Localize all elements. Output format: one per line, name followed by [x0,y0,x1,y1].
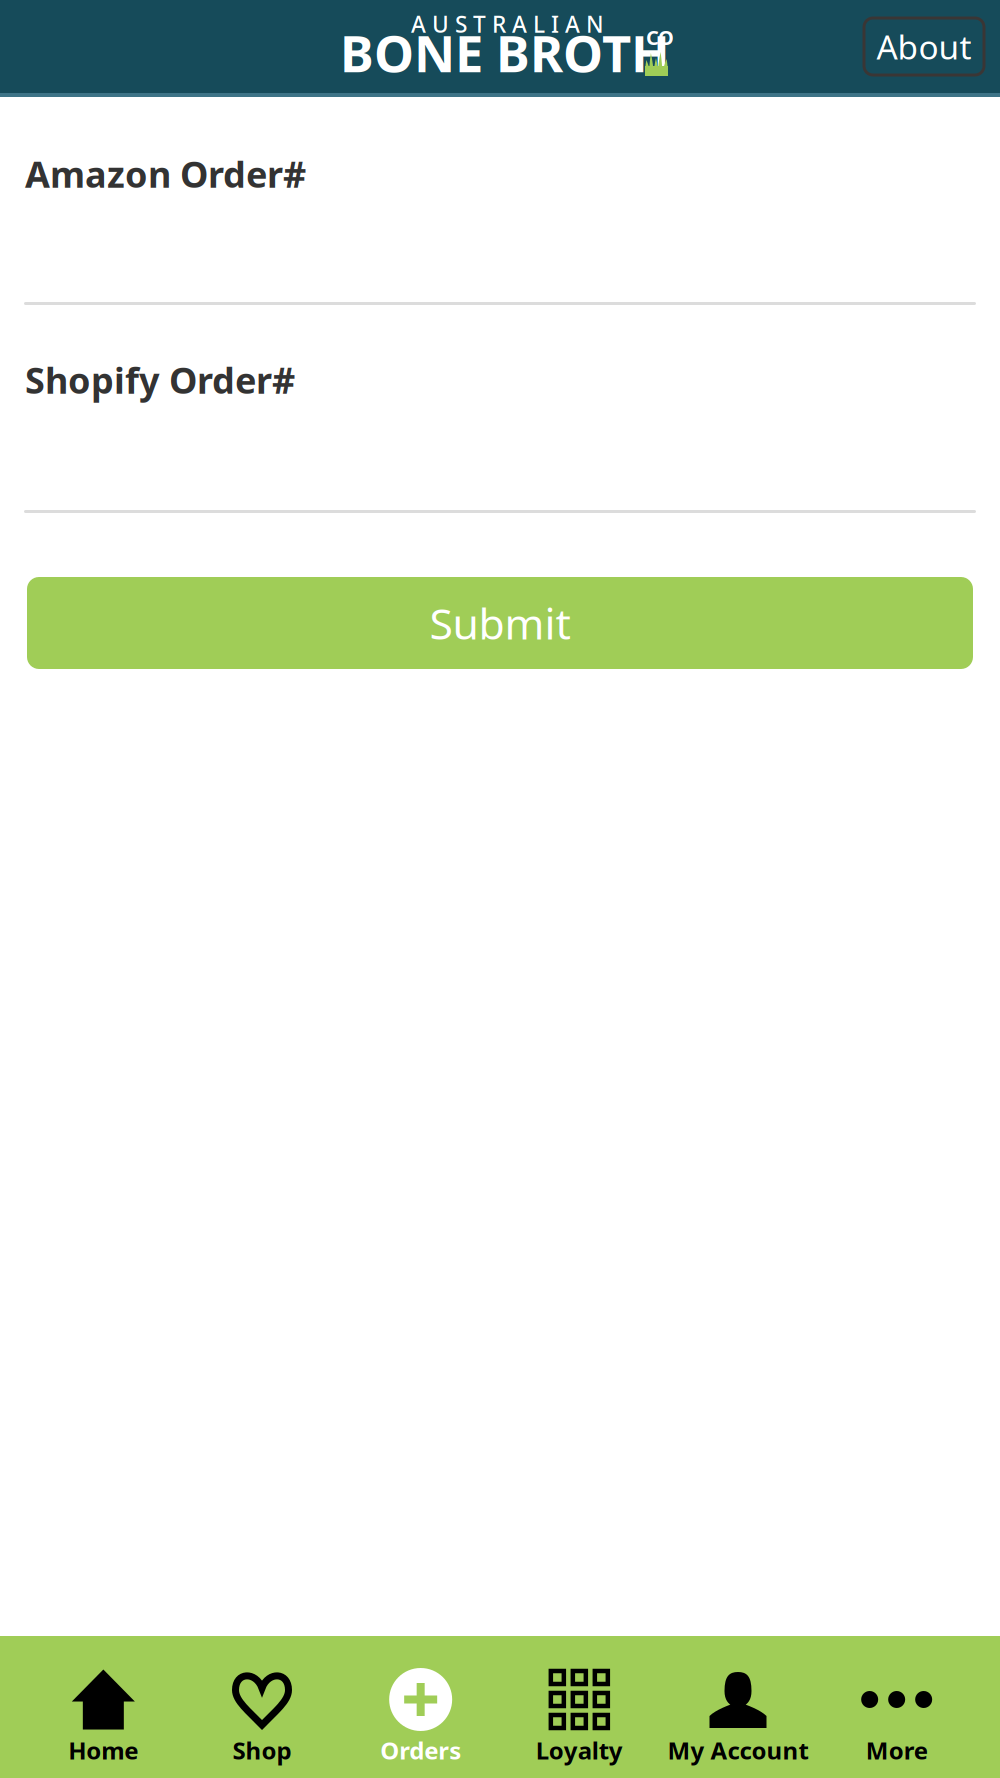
staticText: BONE BROTH [340,19,670,86]
staticText: My Account [667,1734,808,1766]
staticText: Submit [429,595,570,651]
staticText: More [866,1734,928,1766]
staticText: Home [68,1734,138,1766]
staticText: Amazon Order# [25,150,306,198]
button[interactable]: Shop [183,1636,341,1778]
staticText: Shop [232,1734,291,1766]
staticText: Loyalty [536,1734,623,1766]
button[interactable]: Loyalty [500,1636,659,1778]
button[interactable]: Orders [341,1636,500,1778]
button[interactable]: Submit [27,577,973,669]
staticText: CO [646,24,674,51]
button[interactable]: About [864,18,984,75]
staticText: About [876,24,971,69]
staticText: Orders [380,1734,461,1766]
button[interactable]: My Account [659,1636,817,1778]
button[interactable]: More [817,1636,976,1778]
button[interactable]: Home [24,1636,183,1778]
staticText: Shopify Order# [25,356,295,404]
staticText: A U S T R A L I A N [411,9,604,39]
